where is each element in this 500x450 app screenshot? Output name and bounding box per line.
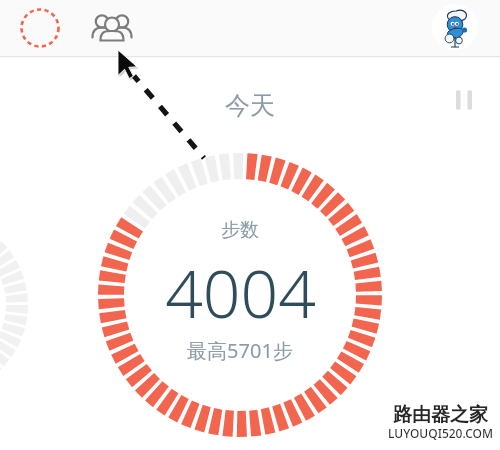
button[interactable]: 今天: [180, 87, 320, 123]
button[interactable]: Pause: [444, 80, 484, 120]
button[interactable]: Profile: [432, 4, 478, 50]
button[interactable]: Friends: [86, 6, 138, 50]
staticText: 今天: [225, 90, 275, 121]
staticText: 4004: [165, 247, 316, 333]
staticText: 最高5701步: [187, 337, 293, 364]
staticText: 步数: [221, 218, 259, 242]
button[interactable]: Activity: [14, 6, 66, 50]
staticText: LUYOUQI520.COM: [388, 425, 493, 441]
staticText: 路由器之家: [393, 403, 488, 425]
